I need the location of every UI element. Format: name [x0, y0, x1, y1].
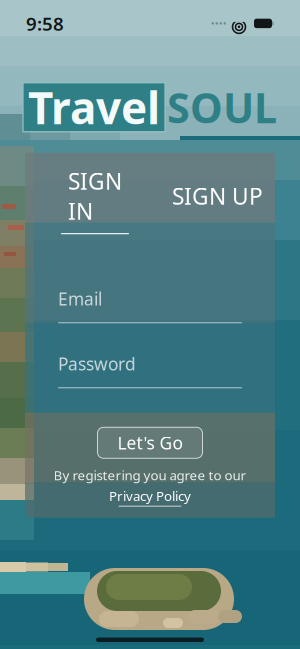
staticText: By registering you agree to our — [53, 466, 246, 484]
staticText: Privacy Policy — [109, 487, 191, 505]
button[interactable]: Email — [58, 287, 242, 323]
button[interactable]: Let's Go — [97, 427, 202, 458]
staticText: SIGN IN — [68, 166, 122, 226]
staticText: 9:58 — [26, 11, 64, 36]
staticText: Let's Go — [117, 431, 182, 454]
staticText: SOUL — [167, 80, 277, 135]
button[interactable]: SIGN UP — [172, 181, 263, 219]
button[interactable]: SIGN IN — [61, 166, 129, 234]
staticText: Password — [58, 352, 136, 375]
staticText: SIGN UP — [172, 181, 263, 211]
staticText: Email — [58, 287, 102, 310]
button[interactable]: Password — [58, 352, 242, 388]
staticText: Travel — [28, 78, 160, 136]
button[interactable]: Privacy Policy — [109, 487, 191, 506]
